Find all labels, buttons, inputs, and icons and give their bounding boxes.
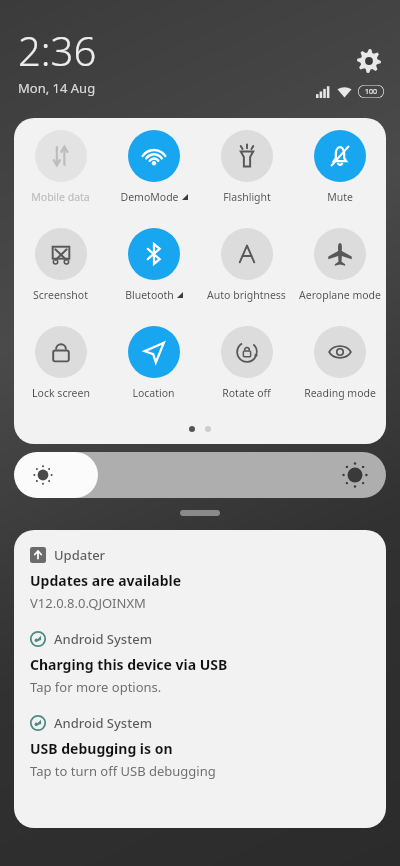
staticText: Tap for more options. <box>30 678 162 696</box>
staticText: Reading mode <box>304 386 376 400</box>
staticText: V12.0.8.0.QJOINXM <box>30 594 146 612</box>
staticText: Android System <box>54 714 152 732</box>
staticText: Updates are available <box>30 571 182 590</box>
staticText: Mon, 14 Aug <box>18 79 96 97</box>
staticText: 2:36 <box>18 23 97 77</box>
button[interactable]: Mobile data <box>14 130 107 228</box>
staticText: DemoMode <box>120 190 179 204</box>
staticText: Location <box>132 386 175 400</box>
button[interactable]: Aeroplane mode <box>293 228 386 326</box>
button[interactable]: DemoMode <box>107 130 200 228</box>
staticText: Mobile data <box>31 190 90 204</box>
button[interactable]: Bluetooth <box>107 228 200 326</box>
button[interactable]: Reading mode <box>293 326 386 424</box>
button[interactable]: Updater <box>30 546 370 612</box>
staticText: Bluetooth <box>125 288 174 302</box>
staticText: Charging this device via USB <box>30 655 228 674</box>
staticText: Flashlight <box>223 190 271 204</box>
button[interactable]: Lock screen <box>14 326 107 424</box>
staticText: Auto brightness <box>207 288 286 302</box>
staticText: Tap to turn off USB debugging <box>30 762 216 780</box>
staticText: USB debugging is on <box>30 739 173 758</box>
staticText: Aeroplane mode <box>299 288 381 302</box>
button[interactable]: Flashlight <box>200 130 293 228</box>
button[interactable]: Android System <box>30 630 370 696</box>
staticText: Lock screen <box>32 386 90 400</box>
button[interactable]: Rotate off <box>200 326 293 424</box>
button[interactable]: Screenshot <box>14 228 107 326</box>
button[interactable]: Location <box>107 326 200 424</box>
button[interactable]: Mute <box>293 130 386 228</box>
staticText: Rotate off <box>222 386 271 400</box>
staticText: Mute <box>327 190 353 204</box>
staticText: 100 <box>365 87 378 97</box>
staticText: Screenshot <box>33 288 88 302</box>
button[interactable]: Android System <box>30 714 370 780</box>
staticText: Updater <box>54 546 106 564</box>
button[interactable]: Settings <box>356 48 382 74</box>
staticText: Android System <box>54 630 152 648</box>
button[interactable]: Brightness <box>14 452 386 498</box>
button[interactable]: Auto brightness <box>200 228 293 326</box>
